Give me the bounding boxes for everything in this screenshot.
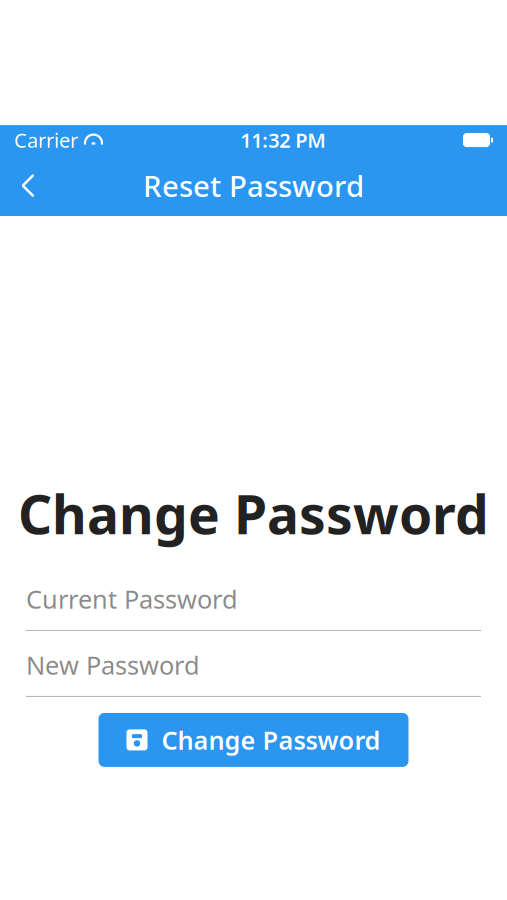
staticText: 11:32 PM: [240, 127, 326, 153]
staticText: Carrier: [14, 127, 78, 153]
staticText: Change Password: [18, 478, 489, 549]
staticText: Reset Password: [143, 166, 364, 205]
staticText: Current Password: [26, 582, 238, 616]
staticText: Change Password: [161, 723, 380, 757]
button[interactable]: Change Password: [98, 713, 408, 767]
button[interactable]: Back: [0, 155, 56, 216]
staticText: New Password: [26, 648, 200, 682]
